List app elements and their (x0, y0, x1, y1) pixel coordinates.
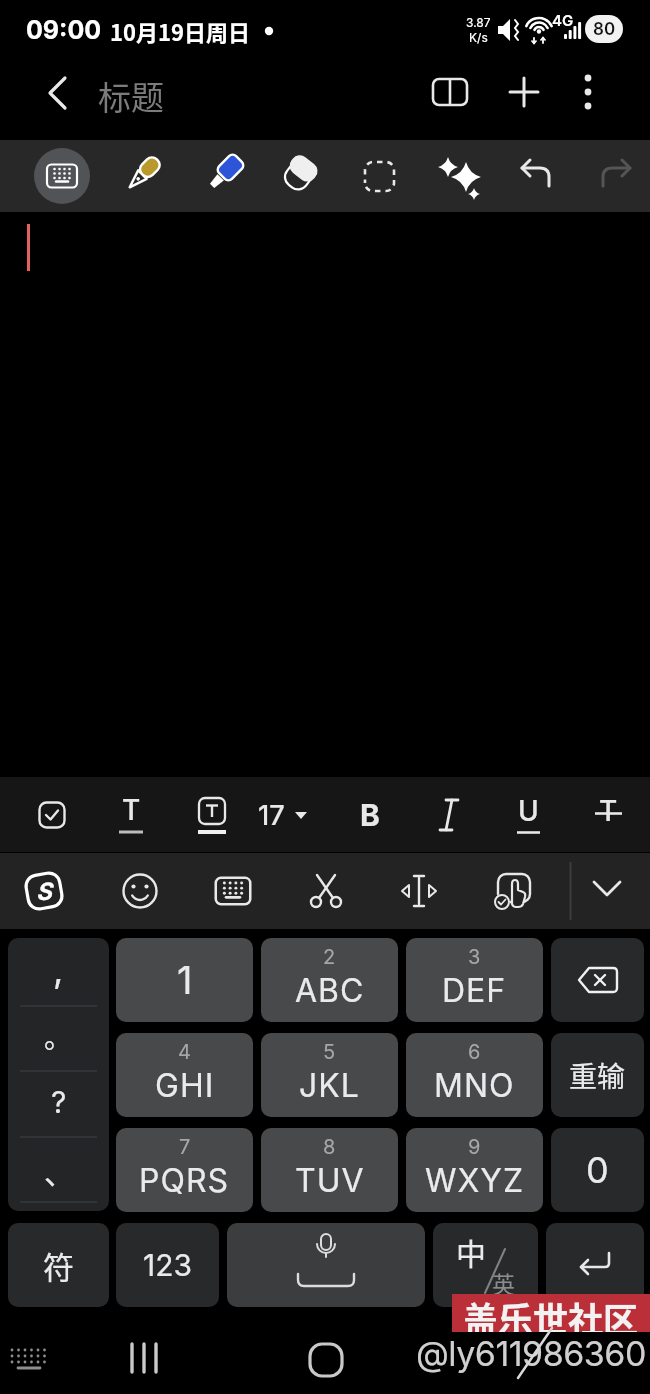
staticText: WXYZ (425, 1161, 525, 1200)
button[interactable] (117, 829, 145, 835)
button[interactable] (116, 1128, 253, 1212)
button[interactable]: 、 (8, 1138, 109, 1202)
button[interactable] (194, 148, 250, 204)
button[interactable] (116, 1033, 253, 1117)
staticText: , (53, 948, 64, 992)
button[interactable] (120, 871, 160, 911)
staticText: 中 (456, 1230, 486, 1273)
staticText: 4G (552, 11, 574, 29)
staticText: MNO (434, 1066, 515, 1105)
button[interactable] (294, 810, 310, 822)
staticText: 英 (492, 1266, 515, 1299)
staticText: 重输 (569, 1055, 626, 1096)
staticText: GHI (155, 1066, 215, 1105)
button[interactable] (116, 938, 253, 1022)
button[interactable] (197, 797, 227, 837)
button[interactable] (578, 72, 598, 112)
staticText: 17 (258, 799, 285, 832)
button[interactable] (406, 1128, 543, 1212)
button[interactable] (261, 1128, 398, 1212)
button[interactable] (269, 148, 325, 204)
button[interactable] (406, 1033, 543, 1117)
button[interactable]: , (8, 938, 109, 1002)
button[interactable] (8, 1344, 54, 1374)
staticText: @ly611986360 (416, 1333, 646, 1374)
staticText: 09:00 (26, 15, 102, 45)
button[interactable] (406, 938, 543, 1022)
button[interactable] (433, 1223, 538, 1307)
staticText: T (122, 793, 141, 825)
staticText: 10月19日周日 (110, 15, 250, 45)
button[interactable] (212, 871, 254, 911)
staticText: 标题 (98, 72, 164, 114)
button[interactable] (436, 152, 484, 200)
button[interactable] (38, 801, 66, 829)
staticText: 3 (468, 945, 481, 969)
button[interactable]: 。 (8, 1004, 109, 1068)
staticText: 7 (179, 1135, 191, 1159)
staticText: 9 (468, 1135, 481, 1159)
staticText: 6 (468, 1040, 481, 1064)
staticText: B (360, 797, 380, 833)
button[interactable] (508, 77, 540, 107)
button[interactable] (596, 158, 634, 194)
staticText: 。 (44, 1016, 73, 1057)
staticText: 123 (143, 1247, 193, 1283)
staticText: U (518, 794, 539, 828)
button[interactable] (431, 77, 469, 107)
button[interactable]: ? (8, 1070, 109, 1134)
button[interactable] (551, 1128, 644, 1212)
staticText: ? (51, 1084, 67, 1120)
staticText: DEF (442, 971, 507, 1010)
button[interactable] (116, 1223, 219, 1307)
staticText: 0 (586, 1148, 609, 1192)
button[interactable] (590, 878, 626, 904)
button[interactable] (546, 1223, 644, 1307)
button[interactable] (22, 869, 66, 913)
button[interactable] (490, 868, 536, 914)
staticText: 8 (323, 1135, 336, 1159)
staticText: S (36, 877, 52, 906)
button[interactable] (551, 938, 644, 1022)
staticText: 5 (323, 1040, 336, 1064)
button[interactable] (124, 1340, 164, 1376)
button[interactable] (594, 811, 624, 817)
button[interactable] (34, 148, 90, 204)
button[interactable] (227, 1223, 425, 1307)
staticText: PQRS (139, 1161, 230, 1200)
button[interactable] (518, 158, 556, 194)
staticText: 符 (43, 1243, 74, 1288)
staticText: 4 (178, 1040, 191, 1064)
button[interactable] (113, 148, 169, 204)
button[interactable] (8, 1223, 109, 1307)
staticText: JKL (299, 1066, 360, 1105)
button[interactable] (44, 76, 72, 110)
button[interactable] (551, 1033, 644, 1117)
staticText: 、 (44, 1149, 74, 1192)
staticText: 3.87 (466, 15, 491, 30)
button[interactable] (516, 830, 542, 836)
staticText: ABC (295, 971, 365, 1010)
button[interactable] (261, 1033, 398, 1117)
staticText: 80 (593, 19, 616, 40)
staticText: 2 (323, 945, 336, 969)
button[interactable] (306, 870, 346, 912)
staticText: T (599, 794, 618, 828)
button[interactable] (433, 797, 465, 835)
staticText: 1 (177, 957, 193, 1003)
button[interactable] (261, 938, 398, 1022)
button[interactable] (363, 160, 396, 193)
staticText: 盖乐世社区 (463, 1292, 639, 1332)
staticText: K/s (469, 30, 488, 45)
staticText: TUV (295, 1161, 365, 1200)
button[interactable] (399, 871, 439, 911)
button[interactable] (308, 1342, 344, 1378)
button[interactable] (8, 938, 109, 1211)
